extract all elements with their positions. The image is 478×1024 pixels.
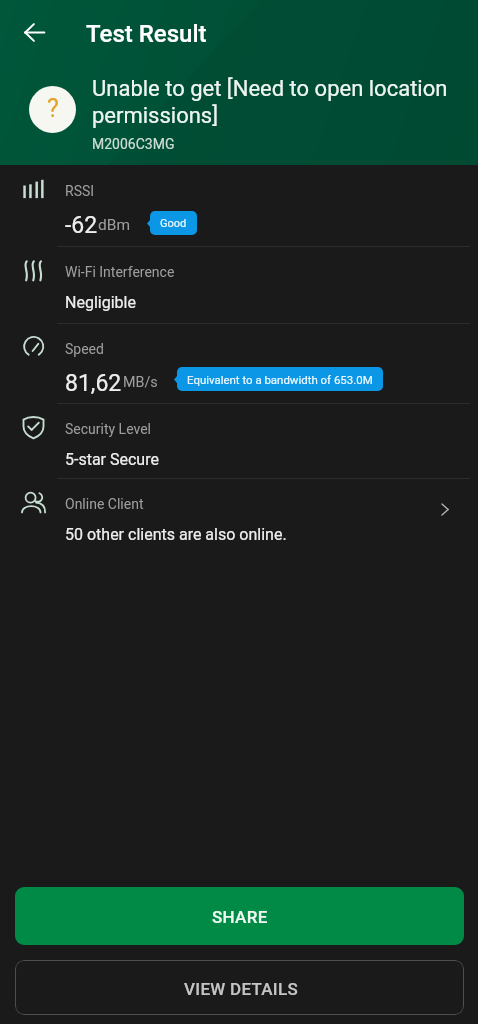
staticText: Unable to get [Need to open location per… <box>92 76 460 129</box>
staticText: ? <box>47 94 59 123</box>
button[interactable]: Back <box>14 12 54 52</box>
staticText: dBm <box>98 216 130 234</box>
staticText: Online Client <box>65 496 144 512</box>
button[interactable]: RSSI <box>0 165 478 246</box>
staticText: Good <box>160 217 187 230</box>
staticText: VIEW DETAILS <box>184 979 299 999</box>
button[interactable]: Security Level <box>0 403 478 478</box>
other: Online clients <box>437 502 452 517</box>
staticText: SHARE <box>212 907 268 927</box>
staticText: 5-star Secure <box>65 450 159 469</box>
staticText: Wi-Fi Interference <box>65 264 175 280</box>
staticText: Speed <box>65 341 104 357</box>
staticText: 50 other clients are also online. <box>65 525 287 544</box>
staticText: -62 <box>65 212 98 239</box>
button[interactable]: Online Client <box>0 478 478 555</box>
staticText: Security Level <box>65 421 152 437</box>
staticText: RSSI <box>65 183 95 199</box>
staticText: Test Result <box>86 20 207 48</box>
staticText: 81,62 <box>65 370 122 397</box>
staticText: M2006C3MG <box>92 136 175 152</box>
button[interactable]: VIEW DETAILS <box>15 960 464 1015</box>
staticText: Equivalent to a bandwidth of 653.0M <box>187 373 373 386</box>
button[interactable]: Speed <box>0 323 478 404</box>
button[interactable]: Wi-Fi Interference <box>0 246 478 323</box>
staticText: MB/s <box>123 374 158 391</box>
button[interactable]: SHARE <box>15 887 464 945</box>
staticText: Negligible <box>65 293 136 312</box>
